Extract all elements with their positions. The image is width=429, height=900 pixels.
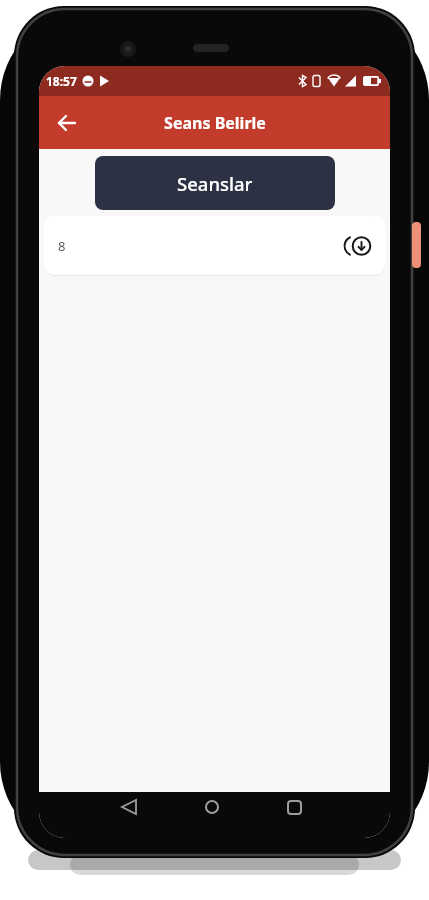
button[interactable]: [114, 792, 144, 822]
button[interactable]: Seanslar: [95, 156, 335, 210]
staticText: Seanslar: [177, 171, 253, 196]
staticText: 8: [58, 237, 66, 255]
button[interactable]: [197, 792, 227, 822]
button[interactable]: [279, 792, 309, 822]
staticText: 18:57: [46, 73, 77, 89]
button[interactable]: [49, 105, 85, 141]
button[interactable]: 8: [44, 216, 385, 275]
staticText: Seans Belirle: [164, 112, 266, 134]
